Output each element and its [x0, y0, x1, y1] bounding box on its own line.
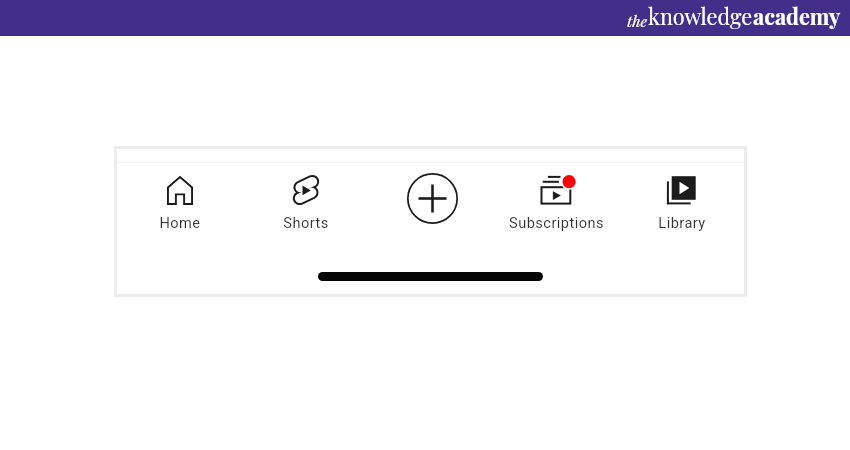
staticText: knowledge — [648, 2, 753, 31]
staticText: Shorts — [283, 214, 329, 231]
staticText: academy — [753, 2, 841, 31]
button[interactable]: Shorts — [243, 172, 369, 231]
staticText: the — [627, 10, 648, 31]
staticText: Library — [658, 214, 706, 231]
button[interactable]: Subscriptions — [494, 172, 619, 231]
button[interactable]: Home — [117, 172, 243, 231]
staticText: Subscriptions — [509, 214, 604, 231]
button[interactable]: Library — [619, 172, 744, 231]
staticText: Home — [159, 214, 201, 231]
button[interactable]: Create — [406, 172, 458, 224]
